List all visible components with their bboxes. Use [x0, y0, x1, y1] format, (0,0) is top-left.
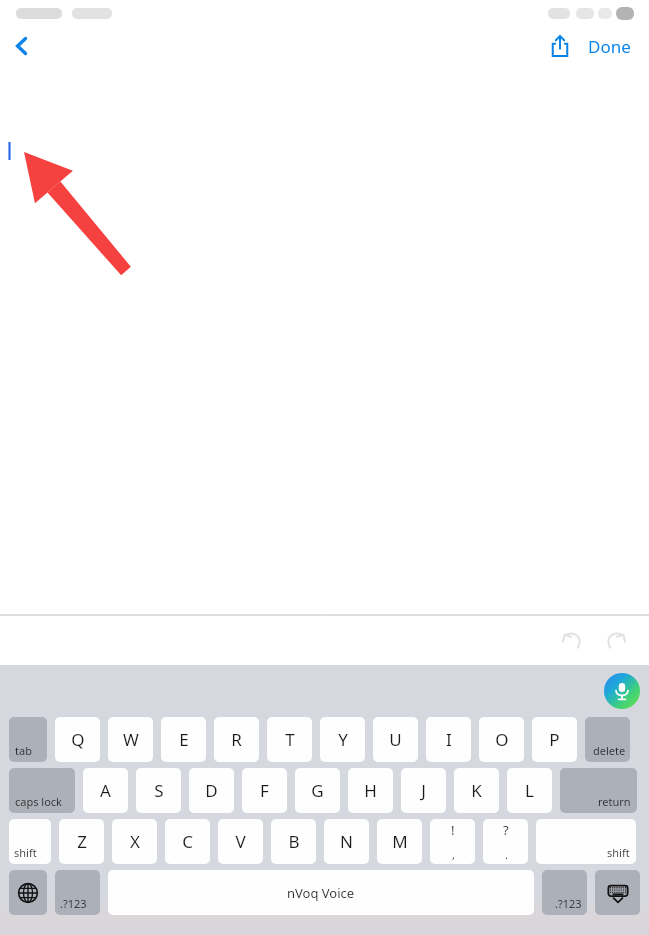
- button[interactable]: C: [165, 819, 210, 864]
- staticText: Y: [338, 728, 348, 751]
- staticText: return: [598, 794, 631, 809]
- staticText: ?: [503, 821, 509, 839]
- staticText: Q: [71, 728, 85, 751]
- button[interactable]: Voice input: [604, 673, 640, 709]
- button[interactable]: Change keyboard language: [9, 870, 47, 915]
- button[interactable]: nVoq Voice: [108, 870, 534, 915]
- button[interactable]: R: [214, 717, 259, 762]
- staticText: A: [100, 779, 111, 802]
- staticText: B: [288, 830, 300, 853]
- staticText: O: [495, 728, 509, 751]
- staticText: shift: [607, 845, 630, 860]
- button[interactable]: Y: [320, 717, 365, 762]
- staticText: !: [451, 821, 455, 839]
- button[interactable]: H: [348, 768, 393, 813]
- staticText: tab: [15, 743, 32, 758]
- button[interactable]: L: [507, 768, 552, 813]
- staticText: .?123: [60, 896, 87, 911]
- staticText: V: [235, 830, 246, 853]
- staticText: F: [260, 779, 269, 802]
- button[interactable]: ?: [483, 819, 528, 864]
- button[interactable]: Share: [540, 26, 580, 66]
- button[interactable]: D: [189, 768, 234, 813]
- staticText: P: [549, 728, 560, 751]
- button[interactable]: E: [161, 717, 206, 762]
- button[interactable]: A: [83, 768, 128, 813]
- staticText: Done: [588, 35, 631, 58]
- staticText: W: [123, 728, 139, 751]
- button[interactable]: P: [532, 717, 577, 762]
- button[interactable]: G: [295, 768, 340, 813]
- button[interactable]: Q: [55, 717, 100, 762]
- staticText: ,: [452, 847, 455, 862]
- button[interactable]: caps lock: [9, 768, 75, 813]
- button[interactable]: S: [136, 768, 181, 813]
- staticText: T: [285, 728, 295, 751]
- staticText: shift: [14, 845, 37, 860]
- staticText: E: [179, 728, 189, 751]
- staticText: K: [471, 779, 482, 802]
- button[interactable]: return: [560, 768, 637, 813]
- button[interactable]: .?123: [542, 870, 587, 915]
- button[interactable]: W: [108, 717, 153, 762]
- staticText: L: [525, 779, 534, 802]
- button[interactable]: tab: [9, 717, 47, 762]
- button[interactable]: Redo: [595, 620, 635, 660]
- button[interactable]: V: [218, 819, 263, 864]
- button[interactable]: B: [271, 819, 316, 864]
- staticText: S: [154, 779, 164, 802]
- button[interactable]: O: [479, 717, 524, 762]
- button[interactable]: shift: [536, 819, 636, 864]
- button[interactable]: U: [373, 717, 418, 762]
- staticText: M: [392, 830, 408, 853]
- staticText: nVoq Voice: [287, 884, 355, 902]
- button[interactable]: X: [112, 819, 157, 864]
- button[interactable]: delete: [585, 717, 630, 762]
- button[interactable]: shift: [9, 819, 51, 864]
- button[interactable]: Done: [580, 29, 639, 64]
- button[interactable]: K: [454, 768, 499, 813]
- staticText: D: [205, 779, 218, 802]
- button[interactable]: Z: [59, 819, 104, 864]
- button[interactable]: .?123: [55, 870, 100, 915]
- staticText: G: [311, 779, 324, 802]
- staticText: J: [421, 779, 426, 802]
- button[interactable]: Back: [0, 26, 44, 66]
- button[interactable]: N: [324, 819, 369, 864]
- button[interactable]: I: [426, 717, 471, 762]
- staticText: H: [364, 779, 377, 802]
- staticText: I: [446, 728, 452, 751]
- staticText: N: [340, 830, 353, 853]
- button[interactable]: !: [430, 819, 475, 864]
- button[interactable]: J: [401, 768, 446, 813]
- staticText: U: [389, 728, 402, 751]
- button[interactable]: M: [377, 819, 422, 864]
- staticText: .: [505, 847, 508, 862]
- staticText: C: [182, 830, 193, 853]
- staticText: R: [231, 728, 242, 751]
- staticText: caps lock: [15, 794, 62, 809]
- button[interactable]: Hide keyboard: [595, 870, 640, 915]
- staticText: delete: [593, 743, 626, 758]
- staticText: Z: [77, 830, 87, 853]
- staticText: X: [130, 830, 140, 853]
- staticText: .?123: [555, 896, 582, 911]
- button[interactable]: F: [242, 768, 287, 813]
- button[interactable]: T: [267, 717, 312, 762]
- button[interactable]: Undo: [553, 620, 593, 660]
